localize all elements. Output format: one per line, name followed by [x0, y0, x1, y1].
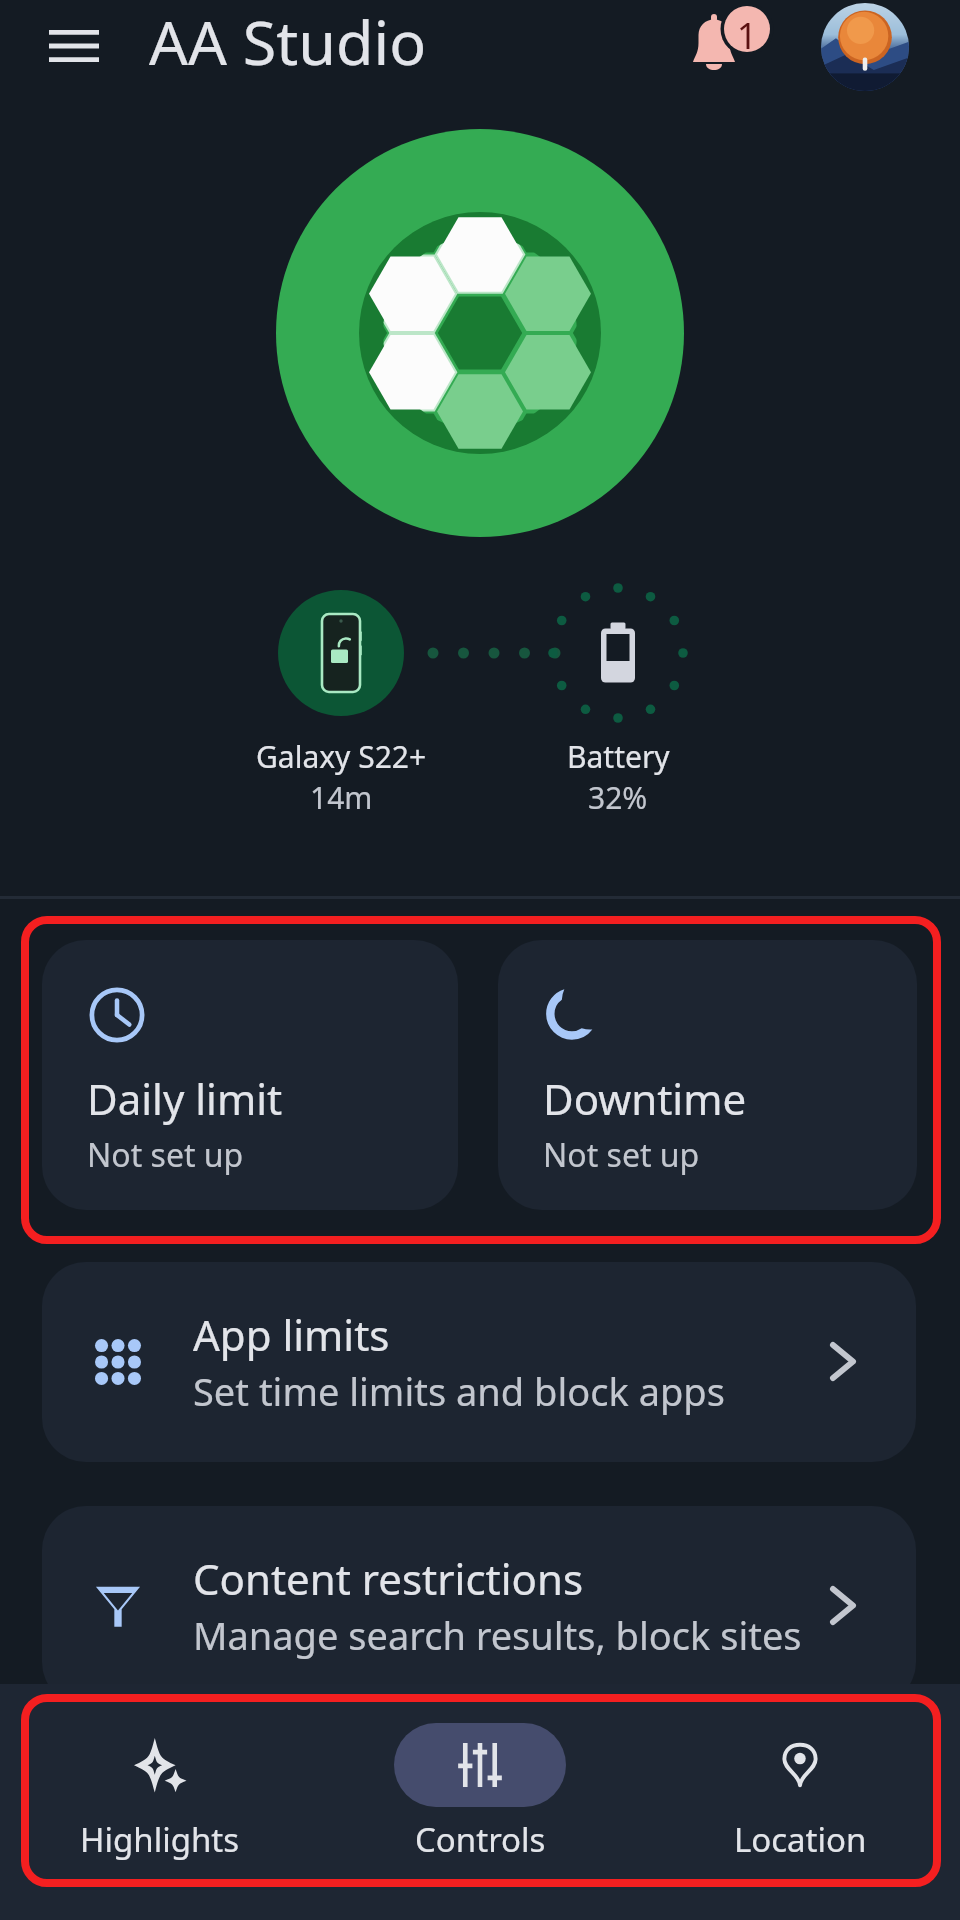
button[interactable]: Controls: [330, 1723, 630, 1862]
button[interactable]: Notifications, 1 new: [684, 2, 780, 94]
button[interactable]: Open navigation menu: [26, 8, 122, 84]
staticText: Not set up: [87, 1133, 244, 1177]
staticText: Battery: [567, 736, 670, 777]
button[interactable]: App limits: [42, 1262, 916, 1462]
button[interactable]: Downtime: [498, 940, 917, 1210]
staticText: 32%: [588, 777, 648, 818]
staticText: Downtime: [543, 1070, 747, 1127]
button[interactable]: Daily limit: [42, 940, 458, 1210]
button[interactable]: Location: [650, 1723, 950, 1862]
button[interactable]: Highlights: [10, 1723, 310, 1862]
staticText: App limits: [193, 1306, 390, 1363]
staticText: 14m: [310, 777, 373, 818]
staticText: Set time limits and block apps: [193, 1365, 725, 1417]
staticText: Location: [734, 1817, 867, 1862]
staticText: Not set up: [543, 1133, 700, 1177]
staticText: Galaxy S22+: [256, 736, 427, 777]
button[interactable]: Profile: [821, 3, 909, 91]
staticText: Content restrictions: [193, 1550, 584, 1607]
button[interactable]: Content restrictions: [42, 1506, 916, 1706]
staticText: 1: [727, 11, 767, 60]
staticText: Highlights: [80, 1817, 240, 1862]
staticText: Daily limit: [87, 1070, 283, 1127]
staticText: Controls: [415, 1817, 546, 1862]
staticText: AA Studio: [149, 0, 427, 83]
staticText: Manage search results, block sites: [193, 1609, 802, 1661]
